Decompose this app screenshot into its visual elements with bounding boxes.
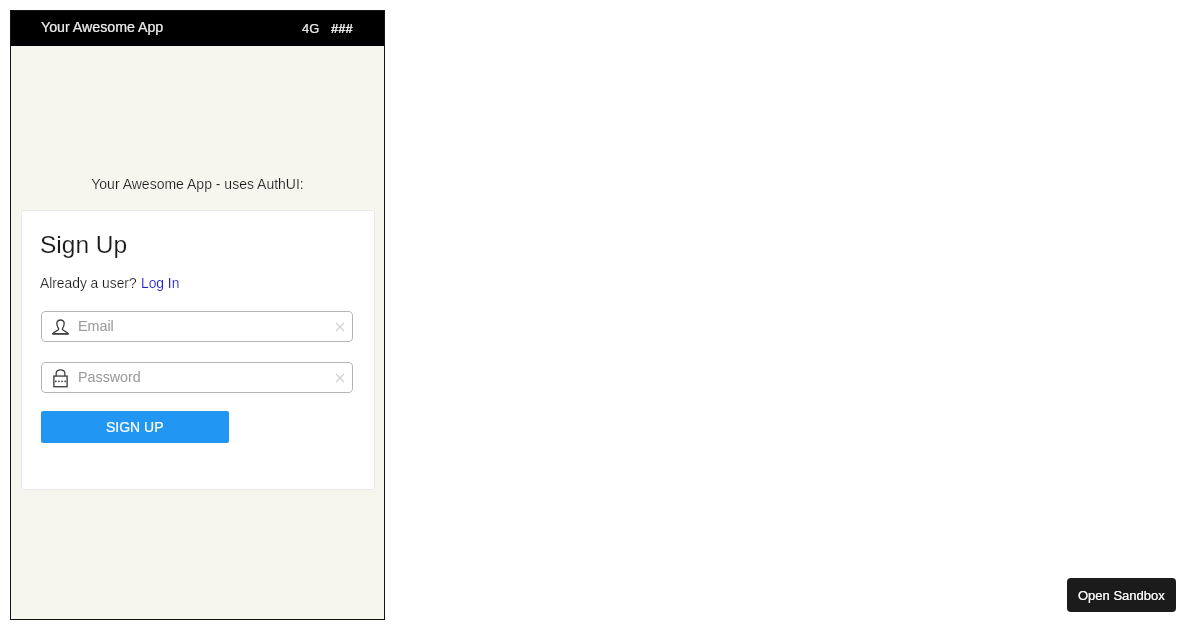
staticText: Open Sandbox xyxy=(1078,588,1165,603)
button[interactable]: Email xyxy=(41,311,353,342)
staticText: Email xyxy=(78,318,114,334)
staticText: ### xyxy=(331,21,353,36)
button[interactable]: SIGN UP xyxy=(41,411,229,443)
staticText: 4G xyxy=(302,21,320,36)
staticText: Sign Up xyxy=(40,231,128,258)
staticText: SIGN UP xyxy=(106,419,164,435)
staticText: Password xyxy=(78,369,141,385)
staticText: Your Awesome App xyxy=(41,19,164,35)
button[interactable]: Open Sandbox xyxy=(1067,578,1176,612)
button[interactable]: Log In xyxy=(141,276,180,291)
button[interactable]: Your Awesome App xyxy=(10,10,385,46)
button[interactable]: Clear Password xyxy=(333,371,347,385)
staticText: Your Awesome App - uses AuthUI: xyxy=(10,176,385,192)
staticText: Already a user? xyxy=(40,276,141,291)
button[interactable]: Password xyxy=(41,362,353,393)
button[interactable]: Clear Email xyxy=(333,320,347,334)
